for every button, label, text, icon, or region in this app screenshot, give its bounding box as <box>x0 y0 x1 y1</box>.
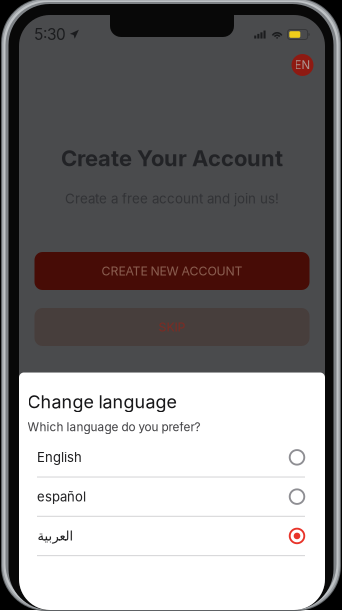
staticText: Change language <box>27 391 176 413</box>
button[interactable]: español <box>37 477 305 517</box>
staticText: EN <box>294 58 310 72</box>
staticText: 5:30 <box>34 25 66 44</box>
staticText: Create Your Account <box>61 145 283 172</box>
staticText: español <box>37 489 86 504</box>
staticText: English <box>37 449 82 465</box>
button[interactable]: SKIP <box>34 308 309 346</box>
button[interactable]: English <box>37 438 305 477</box>
button[interactable]: Change language <box>291 54 313 76</box>
staticText: Which language do you prefer? <box>27 420 200 434</box>
staticText: SKIP <box>158 320 185 334</box>
button[interactable]: CREATE NEW ACCOUNT <box>34 252 309 290</box>
staticText: العربية <box>37 528 73 543</box>
staticText: Create a free account and join us! <box>65 191 279 207</box>
staticText: CREATE NEW ACCOUNT <box>101 264 242 278</box>
button[interactable]: العربية <box>37 517 305 556</box>
